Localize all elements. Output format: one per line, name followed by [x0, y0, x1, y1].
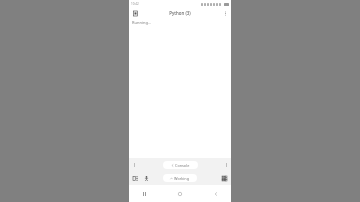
button[interactable]: Run	[142, 174, 151, 183]
button[interactable]: Layout	[131, 174, 140, 183]
staticText: Running...	[132, 20, 152, 25]
button[interactable]: Recent apps	[139, 189, 149, 199]
button[interactable]: Previous tab	[131, 161, 137, 169]
button[interactable]: Next tab	[223, 161, 229, 169]
button[interactable]: Working	[163, 174, 197, 182]
staticText: Working	[174, 176, 190, 181]
button[interactable]: Open navigation	[131, 9, 139, 17]
button[interactable]: More options	[221, 9, 229, 17]
button[interactable]: Keyboard	[220, 174, 229, 183]
staticText: Console	[175, 163, 190, 168]
staticText: Python (3)	[169, 10, 191, 16]
button[interactable]: Console	[163, 161, 198, 169]
staticText: 10:42	[131, 2, 139, 6]
button[interactable]: Home	[175, 189, 185, 199]
button[interactable]: Back	[211, 189, 221, 199]
